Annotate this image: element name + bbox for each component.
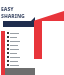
button[interactable] (7, 35, 17, 39)
button[interactable] (7, 43, 18, 47)
button[interactable] (7, 47, 19, 51)
button[interactable] (7, 59, 18, 63)
button[interactable] (7, 51, 17, 55)
staticText: EASY (1, 6, 14, 13)
button[interactable] (7, 55, 20, 59)
button[interactable] (7, 31, 19, 35)
button[interactable] (7, 39, 20, 43)
staticText: SHARING (1, 13, 25, 20)
button[interactable] (7, 63, 19, 67)
